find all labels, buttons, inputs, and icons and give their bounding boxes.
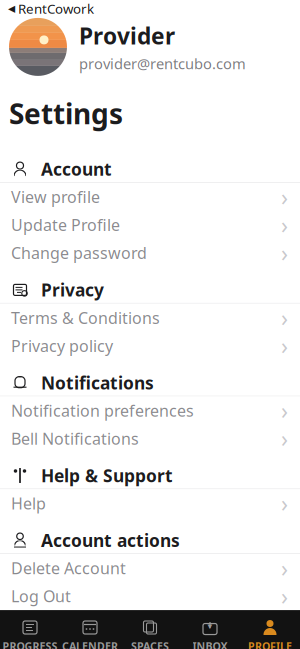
button[interactable]: PROGRESS	[0, 619, 60, 649]
staticText: Bell Notifications	[11, 428, 139, 449]
button[interactable]: CALENDER	[60, 619, 120, 649]
button[interactable]: Terms & Conditions	[0, 304, 300, 332]
staticText: Log Out	[11, 585, 71, 607]
staticText: INBOX	[192, 639, 227, 649]
button[interactable]: Change password	[0, 239, 300, 267]
staticText: ▾	[207, 621, 212, 631]
button[interactable]: ▾	[180, 619, 240, 649]
button[interactable]: Bell Notifications	[0, 424, 300, 452]
staticText: Help & Support	[41, 464, 173, 487]
staticText: ›	[281, 423, 288, 453]
button[interactable]: Delete Account	[0, 554, 300, 582]
button[interactable]: Help	[0, 489, 300, 517]
staticText: Update Profile	[11, 214, 120, 235]
staticText: ›	[281, 395, 288, 425]
button[interactable]: Privacy policy	[0, 332, 300, 360]
staticText: Help	[11, 493, 46, 514]
staticText: ›	[281, 581, 288, 611]
staticText: ◀	[8, 3, 15, 14]
staticText: Settings	[9, 95, 123, 132]
button[interactable]: Notification preferences	[0, 396, 300, 424]
staticText: ›	[281, 331, 288, 361]
button[interactable]: SPACES	[120, 619, 180, 649]
staticText: PROGRESS	[2, 639, 57, 649]
staticText: ›	[281, 488, 288, 518]
staticText: Provider	[79, 21, 175, 51]
staticText: Privacy policy	[11, 335, 113, 356]
staticText: CALENDER	[62, 639, 118, 649]
staticText: ›	[281, 238, 288, 268]
staticText: Change password	[11, 242, 147, 263]
staticText: ›	[281, 182, 288, 212]
staticText: View profile	[11, 186, 100, 207]
staticText: Terms & Conditions	[11, 307, 160, 328]
staticText: ›	[281, 303, 288, 333]
staticText: Account actions	[41, 529, 180, 552]
staticText: SPACES	[131, 639, 169, 649]
staticText: Delete Account	[11, 557, 126, 579]
staticText: RentCowork	[18, 0, 94, 17]
staticText: Notifications	[41, 371, 154, 394]
button[interactable]: View profile	[0, 183, 300, 211]
staticText: Account	[41, 158, 112, 181]
button[interactable]: Update Profile	[0, 211, 300, 239]
staticText: ›	[281, 553, 288, 583]
staticText: PROFILE	[248, 639, 292, 649]
staticText: ›	[281, 210, 288, 240]
staticText: Privacy	[41, 278, 104, 301]
staticText: Notification preferences	[11, 400, 194, 421]
staticText: provider@rentcubo.com	[79, 54, 246, 73]
button[interactable]: PROFILE	[240, 619, 300, 649]
button[interactable]: Log Out	[0, 582, 300, 610]
